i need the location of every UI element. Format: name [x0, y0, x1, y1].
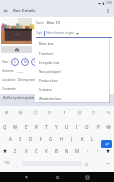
button[interactable]: Z [10, 146, 20, 156]
staticText: D [29, 136, 33, 142]
button[interactable]: O [82, 122, 92, 132]
button[interactable]: Back [22, 173, 31, 182]
button[interactable]: S [11, 58, 19, 66]
staticText: I [76, 124, 78, 130]
button[interactable]: H [57, 134, 67, 144]
staticText: Wardrobe box [39, 96, 61, 100]
staticText: Size: [2, 60, 9, 64]
button[interactable]: ? [93, 146, 103, 156]
button[interactable]: L [31, 58, 39, 66]
button[interactable]: Furniture [35, 48, 109, 57]
button[interactable]: P [93, 122, 103, 132]
staticText: 0.0 m [17, 70, 24, 73]
button[interactable]: X [21, 146, 31, 156]
staticText: Product box [39, 78, 58, 82]
staticText: B [55, 148, 58, 154]
button[interactable]: Delete [103, 146, 113, 156]
button[interactable]: Backspace [103, 122, 113, 132]
button[interactable]: A [5, 134, 15, 144]
staticText: Box 10 [47, 20, 60, 25]
button[interactable]: trans [75, 108, 84, 117]
button[interactable]: S [15, 134, 25, 144]
staticText: Irregular box [39, 60, 60, 64]
staticText: 1 [6, 124, 8, 127]
staticText: , [17, 162, 18, 167]
button[interactable]: G [46, 134, 56, 144]
staticText: V [45, 148, 48, 154]
button[interactable]: B [51, 146, 61, 156]
staticText: Location: [2, 78, 16, 82]
button[interactable]: N [62, 146, 72, 156]
staticText: R [35, 124, 38, 130]
staticText: H [60, 136, 64, 142]
staticText: 0 [99, 124, 101, 127]
button[interactable]: settings [104, 108, 113, 117]
staticText: M [24, 60, 27, 64]
button[interactable]: V [41, 146, 51, 156]
staticText: M [75, 148, 79, 154]
staticText: 8 [78, 124, 80, 127]
button[interactable]: grid [2, 108, 11, 117]
button[interactable]: Q [0, 122, 10, 132]
button[interactable]: K [77, 134, 87, 144]
button[interactable]: clip [16, 108, 25, 117]
staticText: 7 [68, 124, 70, 127]
staticText: Z [14, 148, 17, 154]
button[interactable]: R [31, 122, 41, 132]
staticText: G [49, 136, 53, 142]
button[interactable]: T [41, 122, 51, 132]
button[interactable]: Wardrobe box [35, 93, 109, 102]
button[interactable]: Product box [35, 75, 109, 84]
button[interactable]: ?123 [1, 158, 13, 168]
button[interactable]: W [10, 122, 20, 132]
button[interactable]: Enter [101, 140, 112, 148]
button[interactable]: D [26, 134, 36, 144]
button[interactable]: Not packaged [35, 66, 109, 75]
staticText: Suitcase [39, 87, 52, 91]
staticText: S [14, 60, 16, 64]
button[interactable]: M [21, 58, 29, 66]
button[interactable]: Emoji [81, 159, 91, 169]
button[interactable]: Language [103, 158, 114, 168]
staticText: Basic box [39, 41, 54, 45]
button[interactable]: emoji [45, 108, 54, 117]
staticText: Select/enter a type [46, 31, 75, 35]
button[interactable]: Back [0, 5, 12, 17]
staticText: 6 [57, 124, 59, 127]
button[interactable]: C [31, 146, 41, 156]
button[interactable]: Basic box [35, 38, 109, 48]
button[interactable]: Y [51, 122, 61, 132]
button[interactable]: J [67, 134, 77, 144]
button[interactable]: Take photo [1, 46, 32, 53]
button[interactable]: U [62, 122, 72, 132]
staticText: Furniture [39, 51, 54, 55]
button[interactable]: Recents [83, 173, 92, 182]
staticText: Name: [36, 21, 45, 25]
button[interactable]: M [72, 146, 82, 156]
staticText: 2 [16, 124, 18, 127]
staticText: K [81, 136, 84, 142]
button[interactable]: , [12, 159, 22, 169]
button[interactable]: Suitcase [35, 84, 109, 93]
button[interactable]: E [21, 122, 31, 132]
button[interactable]: gif [31, 108, 40, 117]
button[interactable]: F [36, 134, 46, 144]
staticText: Buffet by diningtable [3, 96, 35, 100]
staticText: ! [87, 149, 88, 154]
staticText: 5 [47, 124, 49, 127]
button[interactable]: Shift [0, 146, 10, 156]
staticText: . [97, 162, 98, 167]
staticText: ?123 [4, 161, 10, 165]
button[interactable]: Irregular box [35, 57, 109, 66]
staticText: 4 [37, 124, 39, 127]
button[interactable]: I [72, 122, 82, 132]
button[interactable]: L [87, 134, 97, 144]
button[interactable]: More options [102, 5, 114, 17]
button[interactable]: sticker [89, 108, 98, 117]
button[interactable]: Buffet by diningtable [0, 94, 114, 107]
button[interactable]: mic [60, 108, 69, 117]
button[interactable]: Home [53, 173, 62, 182]
button[interactable]: ! [82, 146, 92, 156]
